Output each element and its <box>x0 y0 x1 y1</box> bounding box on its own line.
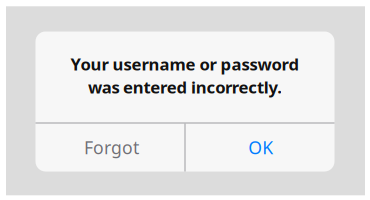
staticText: Your username or password <box>70 53 299 75</box>
staticText: OK <box>248 136 273 159</box>
button[interactable]: OK <box>185 123 334 171</box>
button[interactable]: Forgot <box>35 123 184 171</box>
staticText: was entered incorrectly. <box>88 76 282 98</box>
staticText: Forgot <box>84 136 139 159</box>
